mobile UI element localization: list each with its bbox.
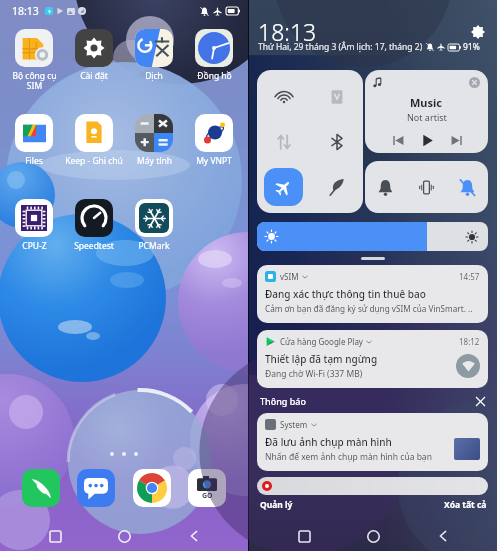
staticText: System [280, 419, 308, 430]
staticText: Cảm ơn bạn đã đăng ký sử dụng vSIM của V… [265, 303, 473, 314]
staticText: Thứ Hai, 29 tháng 3 (Âm lịch: 17, tháng … [258, 41, 423, 53]
staticText: vSIM [280, 271, 299, 282]
staticText: Nhấn để xem ảnh chụp màn hình của bạn [265, 451, 432, 463]
staticText: Not artist [407, 111, 447, 123]
button[interactable]: Battery saver [310, 164, 363, 209]
button[interactable]: Next [443, 127, 469, 153]
button[interactable]: Xóa tất cả [444, 499, 487, 511]
staticText: PCMark [138, 240, 170, 252]
button[interactable]: Settings [468, 22, 488, 42]
staticText: Đang chờ Wi-Fi (337 MB) [265, 368, 363, 380]
button[interactable]: Bluetooth [310, 119, 363, 164]
staticText: Thông báo [260, 395, 306, 407]
button[interactable]: PCMark [124, 199, 184, 252]
button[interactable]: Airplane mode [264, 168, 303, 206]
staticText: Speedtest [74, 240, 114, 252]
button[interactable]: Đồng hồ [184, 29, 244, 82]
staticText: Đồng hồ [197, 70, 232, 82]
button[interactable]: Dịch [124, 29, 184, 82]
button[interactable]: Ring [365, 161, 406, 213]
button[interactable]: My VNPT [184, 114, 244, 167]
button[interactable]: Quản lý [260, 499, 293, 511]
button[interactable]: Vibrate [406, 161, 447, 213]
staticText: My VNPT [196, 155, 232, 167]
button[interactable]: Previous [385, 127, 411, 153]
staticText: Máy tính [137, 155, 172, 167]
staticText: Cửa hàng Google Play [280, 336, 363, 347]
button[interactable]: System [257, 413, 488, 471]
button[interactable]: Back [179, 521, 209, 551]
button[interactable]: Keep - Ghi chú [64, 114, 124, 167]
button[interactable] [184, 199, 244, 237]
staticText: Dịch [145, 70, 163, 82]
button[interactable]: Camera [188, 469, 226, 507]
staticText: 18:12 [459, 336, 480, 347]
button[interactable]: Phone [22, 469, 60, 507]
button[interactable]: Chrome [133, 469, 171, 507]
button[interactable]: Silent [447, 161, 488, 213]
staticText: GO [202, 491, 213, 501]
button[interactable]: Mobile data [257, 119, 310, 164]
staticText: Cài đặt [80, 70, 108, 82]
button[interactable]: Messages [77, 469, 115, 507]
staticText: Đang xác thực thông tin thuê bao [265, 287, 426, 301]
button[interactable]: Files [4, 114, 64, 167]
button[interactable]: Speedtest [64, 199, 124, 252]
button[interactable] [257, 477, 488, 495]
button[interactable]: Cửa hàng Google Play [257, 330, 488, 388]
button[interactable]: Recents [40, 521, 70, 551]
button[interactable]: CPU-Z [4, 199, 64, 252]
button[interactable]: Close [473, 394, 487, 408]
button[interactable]: Wi-Fi [257, 74, 310, 119]
staticText: Thiết lập đã tạm ngừng [265, 352, 378, 366]
staticText: Keep - Ghi chú [65, 155, 123, 167]
button[interactable]: Recents [289, 521, 319, 551]
staticText: 14:57 [459, 271, 480, 282]
button[interactable]: Bộ công cụ SIM [4, 29, 64, 91]
staticText: Music [410, 95, 443, 110]
button[interactable]: vSIM [257, 265, 488, 323]
staticText: Bộ công cụ SIM [12, 70, 57, 91]
button[interactable]: Home [358, 521, 388, 551]
staticText: CPU-Z [22, 240, 47, 252]
button[interactable]: VoLTE [310, 74, 363, 119]
button[interactable]: Home [109, 521, 139, 551]
staticText: Đã lưu ảnh chụp màn hình [265, 435, 392, 449]
button[interactable]: Play [414, 127, 440, 153]
staticText: 91% [463, 41, 480, 53]
button[interactable]: Back [428, 521, 458, 551]
staticText: Files [25, 155, 43, 167]
button[interactable]: Máy tính [124, 114, 184, 167]
staticText: 18:13 [258, 16, 317, 47]
staticText: 18:13 [12, 4, 39, 18]
button[interactable]: Close music [469, 77, 480, 88]
button[interactable]: Cài đặt [64, 29, 124, 82]
button[interactable]: Brightness [257, 222, 488, 251]
